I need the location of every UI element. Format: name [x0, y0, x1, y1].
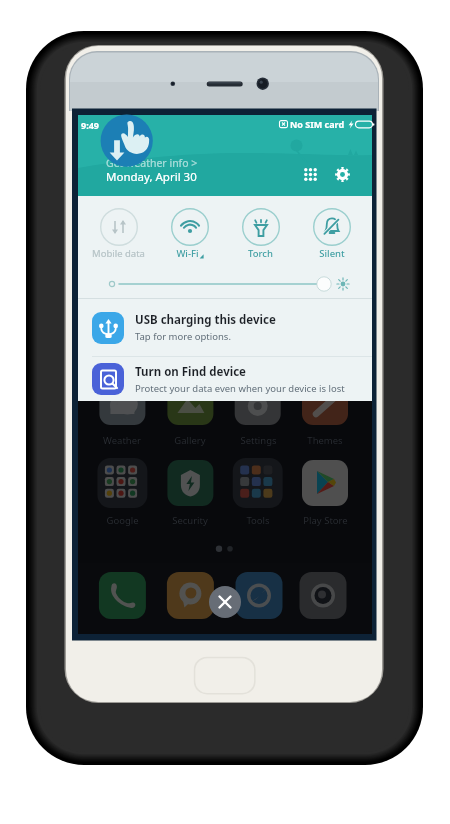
staticText: Protect your data even when your device …: [135, 382, 345, 395]
staticText: Weather: [103, 434, 141, 447]
button[interactable]: Close notification shade: [209, 586, 241, 618]
staticText: Gallery: [174, 434, 206, 447]
button[interactable]: Wi-Fi: [154, 208, 225, 260]
button[interactable]: Torch: [225, 208, 296, 260]
staticText: Mobile data: [92, 247, 145, 260]
button[interactable]: Turn on Find device: [78, 357, 372, 401]
staticText: Play Store: [303, 514, 348, 527]
staticText: Torch: [248, 247, 273, 260]
button[interactable]: Mobile data: [83, 208, 154, 260]
staticText: Get weather info >: [106, 156, 198, 170]
button[interactable]: USB charging this device: [78, 299, 372, 356]
staticText: Silent: [319, 247, 345, 260]
button[interactable]: Silent: [296, 208, 367, 260]
staticText: Google: [106, 514, 139, 527]
staticText: No SIM card: [290, 118, 345, 130]
button[interactable]: Get weather info >: [106, 156, 198, 170]
staticText: Security: [172, 514, 208, 527]
staticText: Wi-Fi: [176, 247, 199, 260]
staticText: USB charging this device: [135, 312, 276, 328]
staticText: Turn on Find device: [135, 364, 246, 380]
staticText: Settings: [240, 434, 277, 447]
button[interactable]: Settings: [328, 160, 356, 188]
staticText: Themes: [307, 434, 343, 447]
staticText: 9:49: [81, 119, 99, 131]
staticText: Tools: [246, 514, 270, 527]
staticText: Monday, April 30: [106, 169, 197, 185]
staticText: Tap for more options.: [135, 330, 231, 343]
button[interactable]: Edit quick settings: [296, 160, 324, 188]
